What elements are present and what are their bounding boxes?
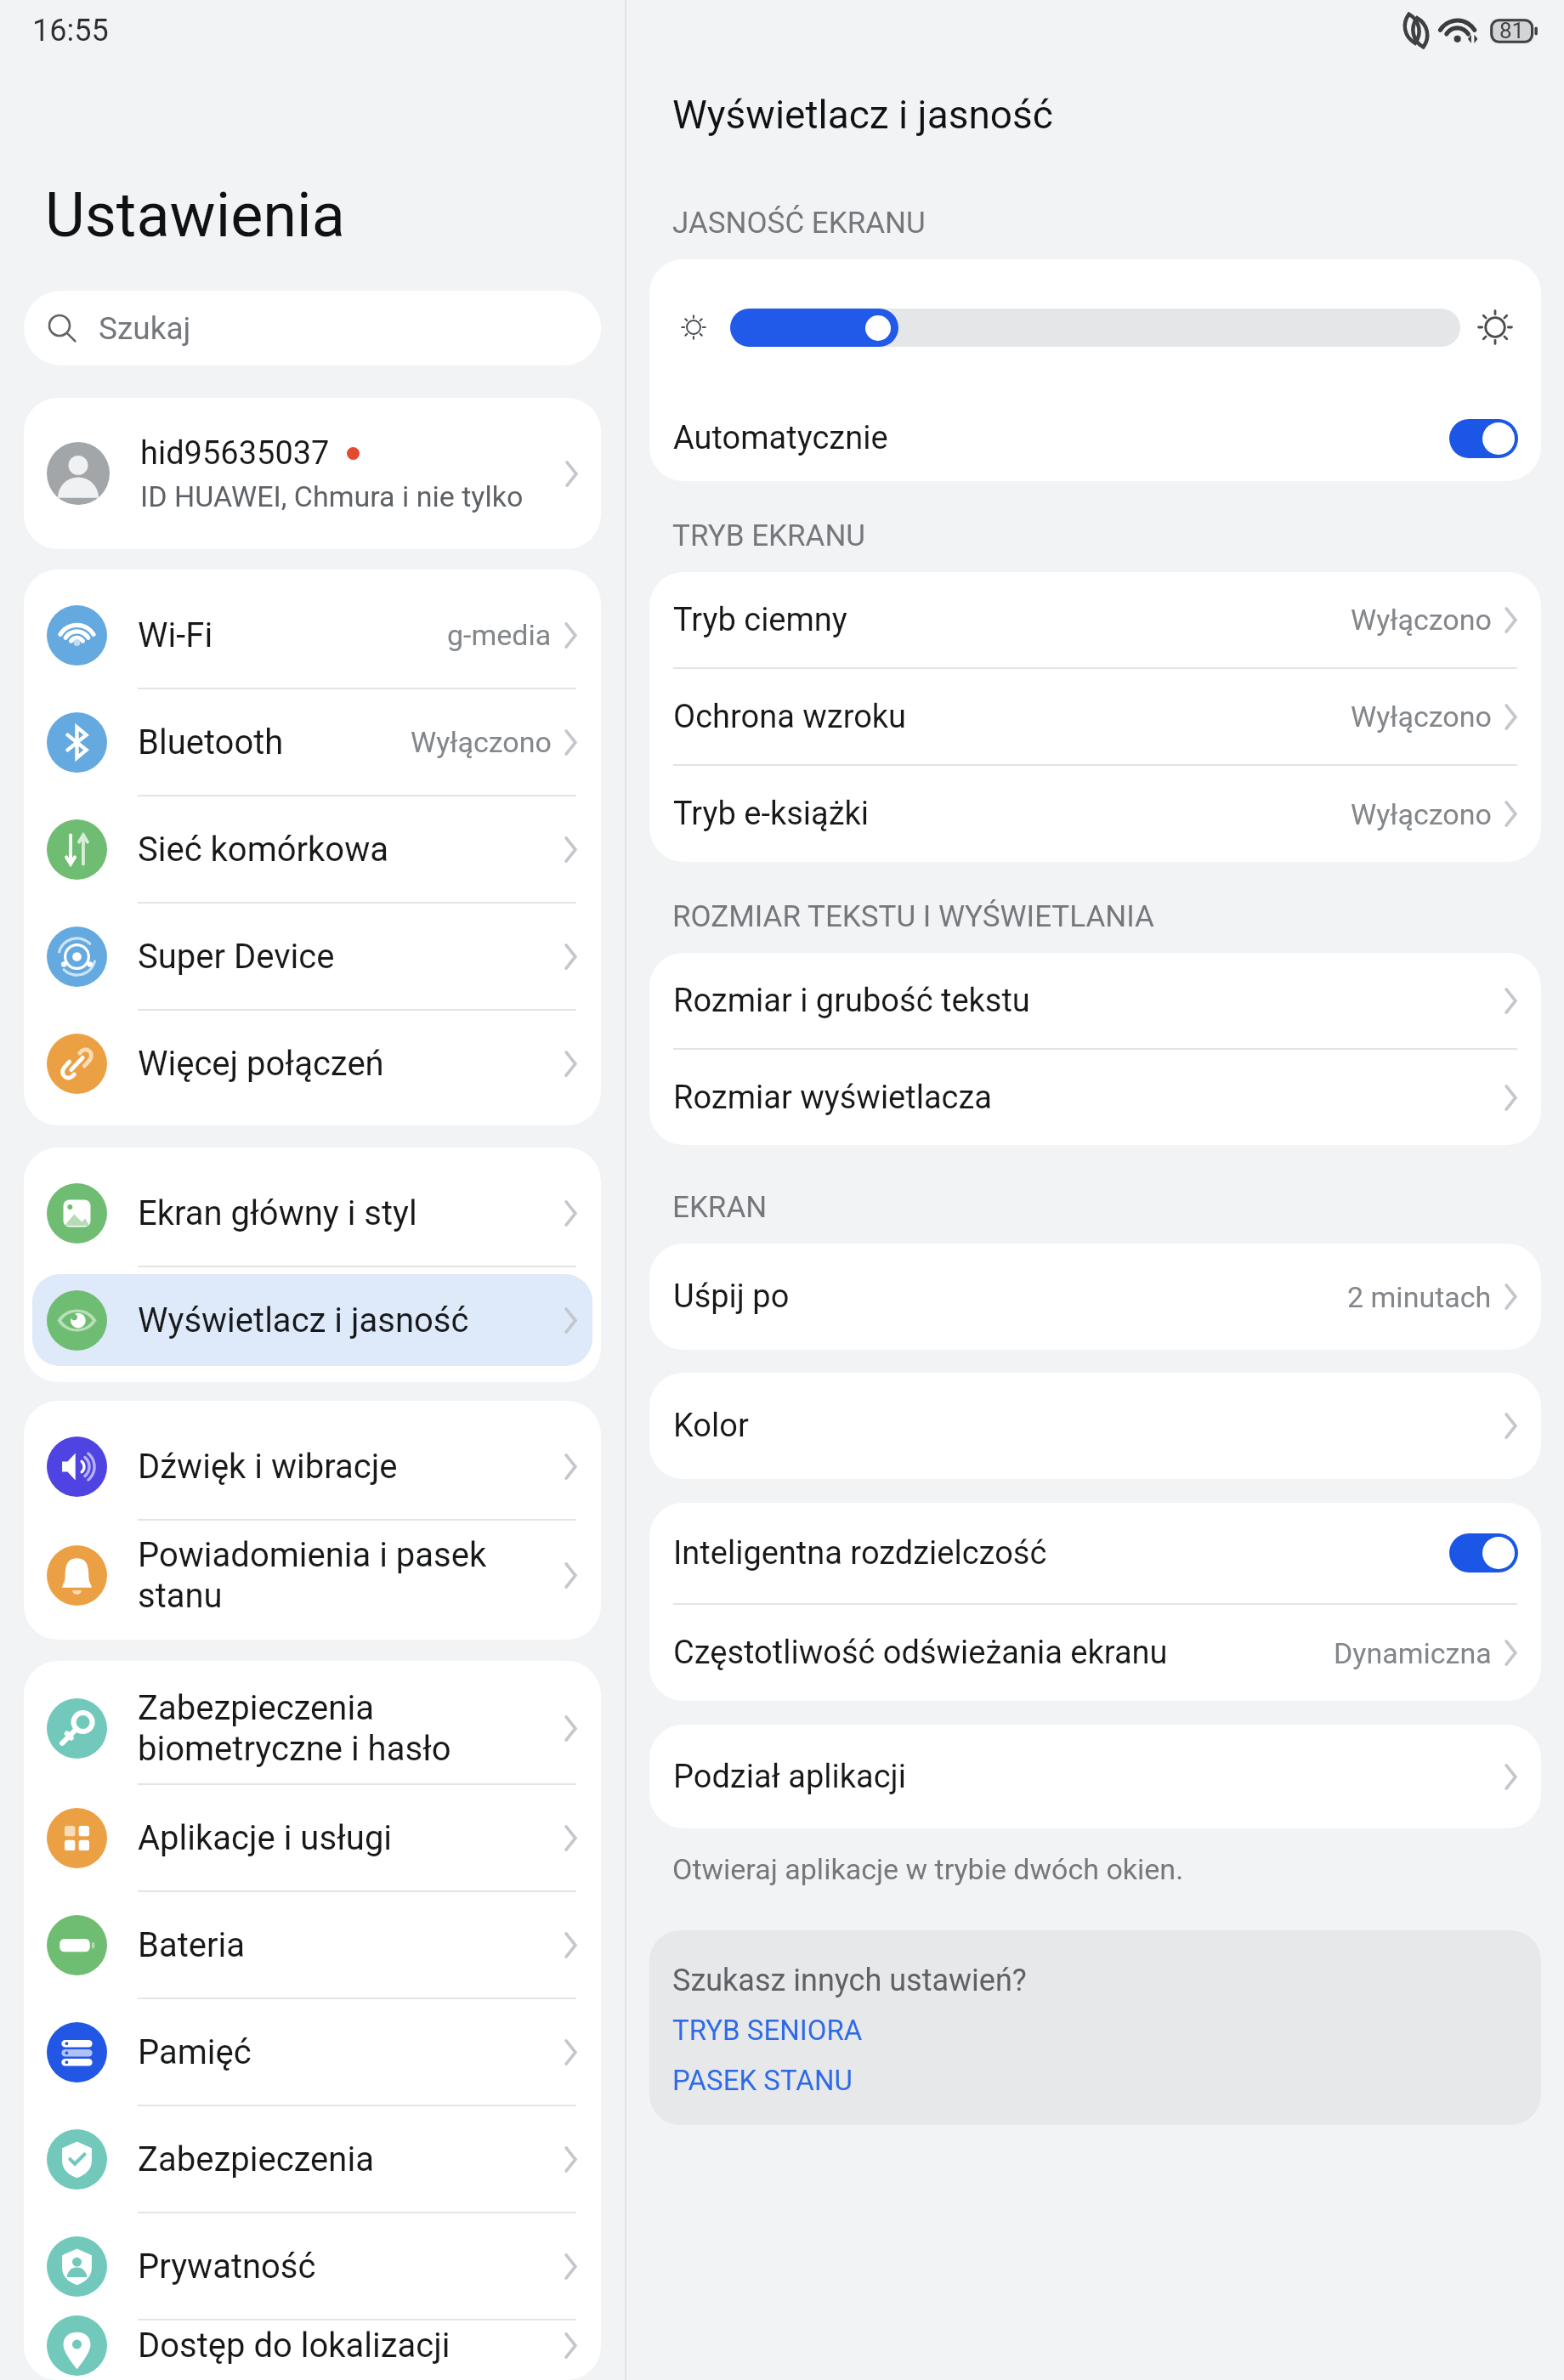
staticText: Szukasz innych ustawień? bbox=[672, 1963, 1027, 1998]
staticText: Wyświetlacz i jasność bbox=[672, 92, 1053, 138]
button[interactable]: Dźwięk i wibracje bbox=[24, 1414, 601, 1519]
button[interactable]: Wyświetlacz i jasność bbox=[32, 1274, 592, 1366]
staticText: Dźwięk i wibracje bbox=[138, 1447, 564, 1487]
button[interactable]: Uśpij po bbox=[649, 1244, 1541, 1350]
staticText: Częstotliwość odświeżania ekranu bbox=[673, 1634, 1334, 1672]
staticText: Aplikacje i usługi bbox=[138, 1818, 564, 1858]
staticText: Inteligentna rozdzielczość bbox=[673, 1534, 1449, 1572]
staticText: Wyłączono bbox=[1351, 700, 1492, 734]
staticText: Rozmiar i grubość tekstu bbox=[673, 982, 1504, 1020]
button[interactable]: Bluetooth bbox=[24, 689, 601, 795]
staticText: Pamięć bbox=[138, 2032, 564, 2072]
staticText: 2 minutach bbox=[1347, 1280, 1492, 1314]
staticText: Wyłączono bbox=[1351, 603, 1492, 637]
staticText: JASNOŚĆ EKRANU bbox=[672, 206, 926, 241]
staticText: Szukaj bbox=[99, 310, 191, 347]
staticText: Super Device bbox=[138, 937, 564, 977]
button[interactable]: Szukaj bbox=[24, 291, 601, 365]
staticText: EKRAN bbox=[672, 1190, 768, 1225]
staticText: Powiadomienia i pasek stanu bbox=[138, 1535, 564, 1616]
staticText: Tryb ciemny bbox=[673, 601, 1351, 639]
staticText: Zabezpieczenia biometryczne i hasło bbox=[138, 1688, 564, 1769]
staticText: g-media bbox=[447, 618, 552, 652]
staticText: Wyłączono bbox=[1351, 797, 1492, 831]
button[interactable]: Kolor bbox=[649, 1373, 1541, 1479]
button[interactable]: Dostęp do lokalizacji bbox=[24, 2320, 601, 2371]
button[interactable]: Pamięć bbox=[24, 1999, 601, 2105]
staticText: ID HUAWEI, Chmura i nie tylko bbox=[140, 479, 524, 513]
button[interactable]: Więcej połączeń bbox=[24, 1011, 601, 1116]
staticText: hid95635037 bbox=[140, 434, 330, 473]
staticText: Sieć komórkowa bbox=[138, 830, 564, 870]
staticText: Otwieraj aplikacje w trybie dwóch okien. bbox=[672, 1852, 1184, 1886]
button[interactable]: Super Device bbox=[24, 904, 601, 1009]
button[interactable]: Ekran główny i styl bbox=[24, 1160, 601, 1266]
staticText: PASEK STANU bbox=[672, 2064, 853, 2097]
staticText: Dynamiczna bbox=[1334, 1636, 1492, 1670]
button[interactable]: Rozmiar wyświetlacza bbox=[649, 1050, 1541, 1145]
button[interactable]: TRYB SENIORA bbox=[672, 2014, 863, 2047]
staticText: Automatycznie bbox=[673, 419, 1449, 457]
staticText: 81 bbox=[1499, 18, 1525, 43]
button[interactable]: Toggle bbox=[1449, 1533, 1518, 1572]
staticText: Wi-Fi bbox=[138, 615, 447, 655]
staticText: Kolor bbox=[673, 1407, 1504, 1445]
staticText: Wyłączono bbox=[411, 725, 552, 759]
staticText: Bateria bbox=[138, 1925, 564, 1965]
staticText: Bluetooth bbox=[138, 722, 411, 762]
staticText: Prywatność bbox=[138, 2247, 564, 2286]
button[interactable]: Tryb e-książki bbox=[649, 766, 1541, 862]
button[interactable] bbox=[649, 259, 1541, 395]
button[interactable]: Rozmiar i grubość tekstu bbox=[649, 953, 1541, 1048]
button[interactable]: Automatycznie bbox=[649, 395, 1541, 481]
button[interactable]: Sieć komórkowa bbox=[24, 796, 601, 902]
staticText: Wyświetlacz i jasność bbox=[138, 1300, 564, 1340]
staticText: ROZMIAR TEKSTU I WYŚWIETLANIA bbox=[672, 899, 1154, 934]
button[interactable]: Ochrona wzroku bbox=[649, 669, 1541, 764]
button[interactable]: Zabezpieczenia biometryczne i hasło bbox=[24, 1674, 601, 1783]
staticText: TRYB SENIORA bbox=[672, 2014, 863, 2047]
button[interactable]: hid95635037 bbox=[24, 398, 601, 549]
staticText: TRYB EKRANU bbox=[672, 518, 866, 553]
staticText: Ustawienia bbox=[45, 179, 345, 251]
button[interactable]: Powiadomienia i pasek stanu bbox=[24, 1521, 601, 1630]
staticText: 16:55 bbox=[32, 13, 109, 48]
button[interactable]: Zabezpieczenia bbox=[24, 2106, 601, 2212]
button[interactable]: Tryb ciemny bbox=[649, 572, 1541, 667]
button[interactable]: Aplikacje i usługi bbox=[24, 1785, 601, 1890]
button[interactable]: Częstotliwość odświeżania ekranu bbox=[649, 1605, 1541, 1701]
staticText: Podział aplikacji bbox=[673, 1758, 1504, 1796]
button[interactable]: Podział aplikacji bbox=[649, 1725, 1541, 1828]
staticText: Ochrona wzroku bbox=[673, 698, 1351, 736]
staticText: Zabezpieczenia bbox=[138, 2139, 564, 2179]
staticText: Rozmiar wyświetlacza bbox=[673, 1079, 1504, 1117]
button[interactable]: Prywatność bbox=[24, 2213, 601, 2319]
staticText: Tryb e-książki bbox=[673, 795, 1351, 833]
staticText: Więcej połączeń bbox=[138, 1044, 564, 1084]
button[interactable]: Bateria bbox=[24, 1892, 601, 1997]
staticText: Ekran główny i styl bbox=[138, 1193, 564, 1233]
staticText: Dostęp do lokalizacji bbox=[138, 2326, 564, 2366]
button[interactable]: PASEK STANU bbox=[672, 2064, 853, 2097]
button[interactable]: Toggle bbox=[1449, 419, 1518, 458]
staticText: Uśpij po bbox=[673, 1278, 1347, 1316]
button[interactable]: Wi-Fi bbox=[24, 582, 601, 688]
button[interactable]: Inteligentna rozdzielczość bbox=[649, 1503, 1541, 1603]
